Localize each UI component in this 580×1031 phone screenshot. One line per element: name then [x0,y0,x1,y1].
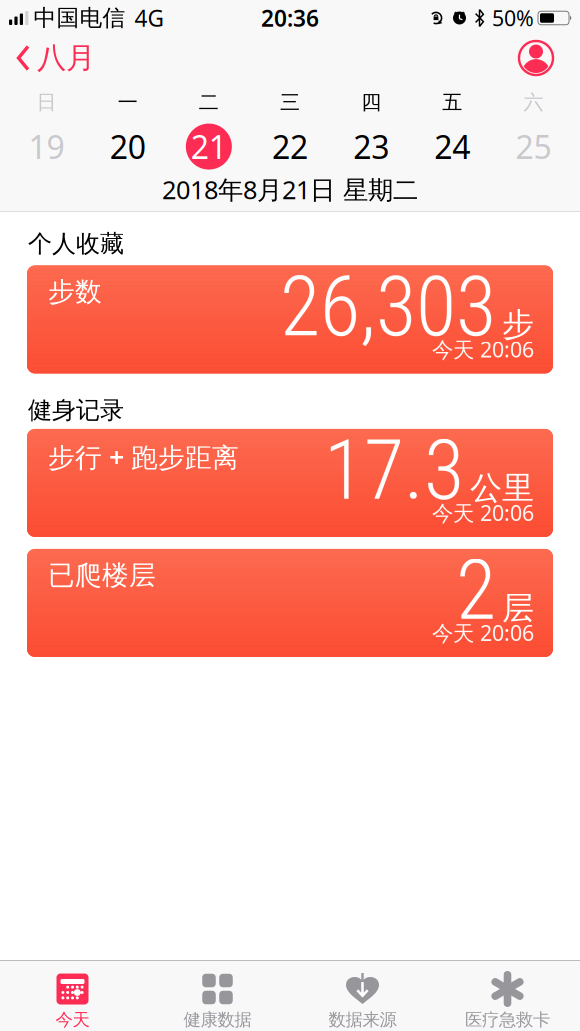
staticText: 2 [456,542,496,639]
staticText: 一 [118,90,138,115]
staticText: 4G [134,3,164,33]
staticText: 二 [199,90,219,115]
button[interactable]: 个人资料 [518,40,580,76]
staticText: 23 [353,125,389,168]
staticText: 健身记录 [28,395,124,425]
staticText: 数据来源 [328,1009,396,1030]
staticText: 今天 20:06 [432,335,534,363]
staticText: 个人收藏 [28,229,124,258]
staticText: 中国电信 [33,4,125,32]
staticText: 2018年8月21日 星期二 [162,173,418,206]
staticText: 层 [502,588,534,628]
button[interactable]: 步行 + 跑步距离 [27,429,553,537]
staticText: 医疗急救卡 [465,1009,550,1030]
staticText: 五 [442,90,462,115]
staticText: 50% [492,4,534,32]
staticText: 公里 [470,468,534,508]
staticText: 20:36 [261,3,319,33]
button[interactable]: 22 [249,123,330,171]
staticText: 今天 [55,1009,89,1030]
button[interactable]: 25 [493,123,574,171]
staticText: 19 [29,125,65,168]
staticText: 21 [191,125,227,168]
button[interactable]: 19 [6,123,87,171]
staticText: 六 [523,90,543,115]
staticText: 今天 20:06 [432,499,534,527]
staticText: 八月 [37,40,95,76]
staticText: 17.3 [324,422,464,519]
staticText: 今天 20:06 [432,619,534,647]
staticText: 健康数据 [183,1009,251,1030]
button[interactable]: 数据来源 [290,973,435,1030]
staticText: 25 [515,125,551,168]
staticText: 日 [37,90,57,115]
staticText: 四 [361,90,381,115]
button[interactable]: 21 [168,123,249,171]
button[interactable]: 今天 [0,973,145,1030]
button[interactable]: 健康数据 [145,973,290,1030]
button[interactable]: 八月 [0,40,95,76]
button[interactable]: 24 [412,123,493,171]
button[interactable]: 医疗急救卡 [435,973,580,1030]
staticText: 步行 + 跑步距离 [48,439,239,474]
staticText: 已爬楼层 [48,559,156,592]
button[interactable]: 已爬楼层 [27,549,553,657]
staticText: 24 [434,125,470,168]
staticText: 步数 [48,275,102,308]
staticText: 26,303 [280,258,496,355]
staticText: 20 [110,125,146,168]
staticText: 步 [502,305,534,344]
button[interactable]: 23 [331,123,412,171]
button[interactable]: 20 [87,123,168,171]
staticText: 三 [280,90,300,115]
button[interactable]: 步数 [27,265,553,373]
staticText: 22 [272,125,308,168]
